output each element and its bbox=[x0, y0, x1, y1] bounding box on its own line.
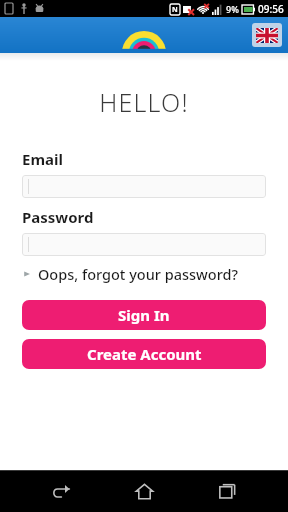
staticText: Oops, forgot your password? bbox=[38, 264, 238, 284]
staticText: Create Account bbox=[87, 344, 202, 364]
staticText: Password bbox=[22, 207, 94, 227]
staticText: HELLO! bbox=[0, 85, 288, 119]
button[interactable]: Sign In bbox=[22, 300, 266, 330]
staticText: N bbox=[172, 5, 178, 15]
button[interactable]: Language: English bbox=[252, 23, 282, 47]
staticText: 9% bbox=[226, 3, 239, 15]
button[interactable] bbox=[22, 233, 266, 256]
other: Logo bbox=[121, 23, 167, 53]
button[interactable]: Home bbox=[122, 470, 166, 512]
staticText: Email bbox=[22, 149, 63, 169]
button[interactable]: Oops, forgot your password? bbox=[22, 264, 266, 284]
button[interactable]: Back bbox=[39, 470, 83, 512]
staticText: 09:56 bbox=[258, 2, 284, 16]
button[interactable] bbox=[22, 175, 266, 198]
staticText: Sign In bbox=[118, 305, 170, 325]
button[interactable]: Recent apps bbox=[205, 470, 249, 512]
button[interactable]: Create Account bbox=[22, 339, 266, 369]
